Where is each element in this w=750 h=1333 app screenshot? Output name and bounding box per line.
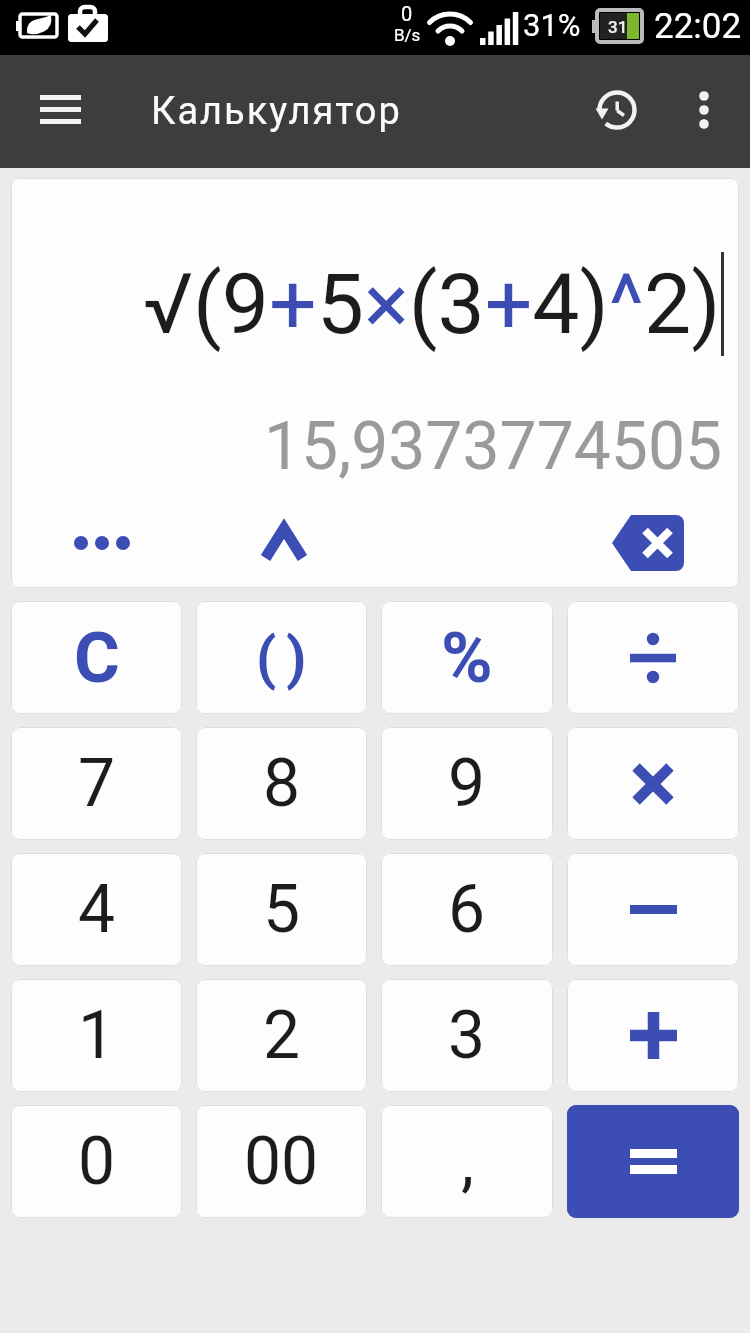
staticText: 7 — [78, 745, 116, 822]
staticText: 15,9373774505 — [264, 408, 723, 485]
button[interactable]: 7 — [11, 727, 182, 840]
button[interactable] — [557, 512, 739, 574]
button[interactable] — [567, 727, 739, 840]
staticText: 0 — [401, 2, 413, 25]
staticText: 22:02 — [654, 6, 742, 47]
staticText: 8 — [263, 745, 301, 822]
staticText: % — [441, 617, 493, 699]
button[interactable]: 1 — [11, 979, 182, 1092]
button[interactable] — [697, 89, 711, 131]
button[interactable]: 9 — [381, 727, 553, 840]
staticText: 9 — [448, 745, 486, 822]
staticText: ) — [286, 624, 307, 692]
staticText: B/s — [394, 25, 421, 45]
button[interactable] — [40, 95, 81, 124]
staticText: 31 — [608, 17, 628, 37]
button[interactable] — [594, 88, 638, 132]
staticText: Калькулятор — [151, 89, 402, 134]
staticText: C — [74, 617, 120, 699]
button[interactable] — [567, 979, 739, 1092]
staticText: 00 — [244, 1123, 319, 1200]
staticText: 0 — [78, 1123, 116, 1200]
button[interactable] — [193, 512, 375, 574]
button[interactable]: C — [11, 601, 182, 714]
button[interactable]: 5 — [196, 853, 367, 966]
staticText: 5 — [263, 871, 301, 948]
staticText: 4 — [78, 871, 116, 948]
button[interactable]: 6 — [381, 853, 553, 966]
button[interactable]: , — [381, 1105, 553, 1218]
button[interactable]: 00 — [196, 1105, 367, 1218]
button[interactable] — [567, 1105, 739, 1218]
staticText: √(9+5×(3+4)^2) — [143, 255, 721, 353]
staticText: 3 — [448, 997, 486, 1074]
staticText: 2 — [263, 997, 301, 1074]
button[interactable]: 4 — [11, 853, 182, 966]
button[interactable]: 2 — [196, 979, 367, 1092]
button[interactable]: % — [381, 601, 553, 714]
button[interactable] — [567, 601, 739, 714]
button[interactable]: ( — [196, 601, 367, 714]
button[interactable]: 3 — [381, 979, 553, 1092]
button[interactable] — [567, 853, 739, 966]
button[interactable]: 8 — [196, 727, 367, 840]
staticText: , — [461, 1123, 474, 1200]
staticText: ( — [256, 624, 277, 692]
staticText: 31% — [523, 7, 581, 43]
staticText: 1 — [78, 997, 116, 1074]
staticText: 6 — [448, 871, 486, 948]
button[interactable] — [11, 512, 193, 574]
button[interactable]: 0 — [11, 1105, 182, 1218]
